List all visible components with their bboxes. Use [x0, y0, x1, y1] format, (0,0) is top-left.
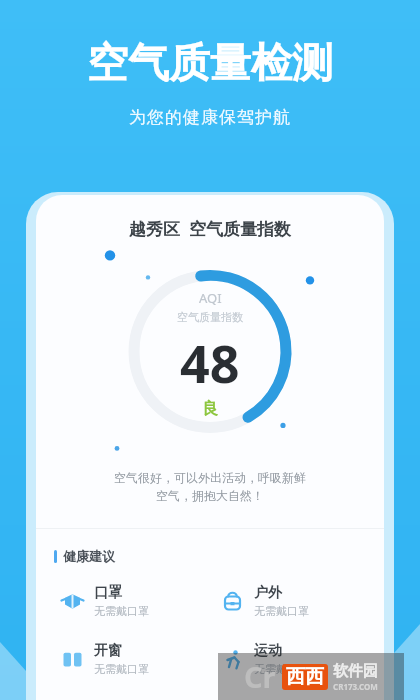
- staticText: 48: [180, 327, 240, 398]
- staticText: 良: [202, 399, 218, 419]
- staticText: 空气质量指数: [177, 310, 243, 324]
- staticText: 无需戴口罩: [254, 662, 309, 676]
- staticText: 软件园: [333, 662, 378, 681]
- staticText: AQI: [199, 289, 222, 307]
- button[interactable]: 口罩: [50, 582, 210, 620]
- staticText: 无需戴口罩: [94, 604, 149, 618]
- button[interactable]: 运动: [210, 640, 370, 678]
- other: Watermark: [218, 653, 404, 700]
- staticText: 为您的健康保驾护航: [0, 107, 420, 128]
- staticText: Cr: [244, 657, 276, 696]
- staticText: 无需戴口罩: [254, 604, 309, 618]
- staticText: 空气很好，可以外出活动，呼吸新鲜 空气，拥抱大自然！: [58, 470, 362, 504]
- staticText: 越秀区 空气质量指数: [36, 217, 384, 240]
- staticText: 空气质量检测: [0, 38, 420, 90]
- staticText: 运动: [254, 642, 282, 660]
- staticText: 口罩: [94, 584, 122, 602]
- button[interactable]: 户外: [210, 582, 370, 620]
- staticText: 开窗: [94, 642, 122, 660]
- staticText: 户外: [254, 584, 282, 602]
- staticText: 西西: [286, 665, 324, 689]
- staticText: 健康建议: [63, 548, 115, 564]
- staticText: CR173.COM: [333, 681, 378, 692]
- button[interactable]: 开窗: [50, 640, 210, 678]
- staticText: 无需戴口罩: [94, 662, 149, 676]
